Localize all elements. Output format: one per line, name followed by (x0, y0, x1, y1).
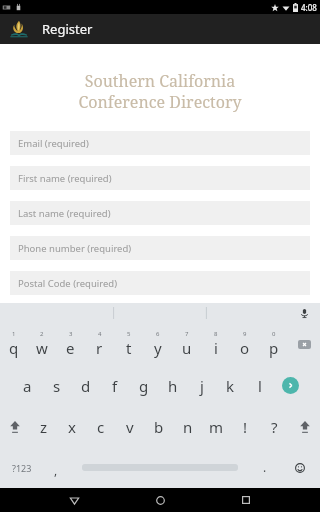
staticText: r (96, 338, 103, 358)
staticText: Last name (required) (18, 207, 111, 220)
button[interactable]: 8 (201, 323, 230, 365)
staticText: l (258, 376, 262, 396)
button[interactable]: l (245, 365, 274, 406)
staticText: Register (42, 20, 93, 38)
staticText: ! (243, 417, 248, 437)
button[interactable]: Next (274, 365, 306, 406)
staticText: i (214, 338, 218, 358)
button[interactable]: m (202, 406, 231, 447)
button[interactable]: ! (231, 406, 260, 447)
button[interactable]: Home (148, 488, 172, 512)
staticText: z (40, 417, 48, 437)
staticText: v (126, 417, 134, 437)
button[interactable]: z (30, 406, 58, 447)
button[interactable]: 7 (172, 323, 201, 365)
button[interactable]: 0 (259, 323, 288, 365)
button[interactable]: Postal Code (required) (10, 271, 310, 295)
button[interactable]: Shift (0, 406, 30, 447)
staticText: x (68, 417, 76, 437)
staticText: c (97, 417, 105, 437)
button[interactable]: s (42, 365, 71, 406)
staticText: Phone number (required) (18, 242, 132, 255)
staticText: k (226, 376, 235, 396)
staticText: 0 (272, 330, 276, 338)
button[interactable]: v (115, 406, 144, 447)
staticText: h (168, 376, 178, 396)
button[interactable]: 6 (143, 323, 172, 365)
button[interactable]: 5 (114, 323, 143, 365)
staticText: p (269, 338, 279, 358)
button[interactable]: b (144, 406, 173, 447)
staticText: n (183, 417, 193, 437)
button[interactable]: Phone number (required) (10, 236, 310, 260)
staticText: o (240, 338, 250, 358)
staticText: d (81, 376, 91, 396)
button[interactable]: Voice input (296, 305, 312, 321)
button[interactable]: n (173, 406, 202, 447)
staticText: 3 (69, 330, 73, 338)
button[interactable]: Email (required) (10, 131, 310, 155)
button[interactable]: a (13, 365, 42, 406)
staticText: m (209, 417, 224, 437)
button[interactable]: Backspace (288, 323, 320, 365)
button[interactable]: k (216, 365, 245, 406)
button[interactable]: Space (69, 447, 250, 488)
staticText: b (154, 417, 164, 437)
staticText: 5 (127, 330, 131, 338)
button[interactable]: 9 (230, 323, 259, 365)
staticText: a (23, 376, 32, 396)
staticText: g (139, 376, 149, 396)
staticText: ? (271, 417, 278, 437)
staticText: e (66, 338, 75, 358)
staticText: j (200, 376, 204, 396)
staticText: t (126, 338, 132, 358)
button[interactable]: ? (260, 406, 289, 447)
button[interactable]: 3 (56, 323, 85, 365)
staticText: ?123 (12, 462, 32, 474)
button[interactable]: x (58, 406, 86, 447)
staticText: First name (required) (18, 172, 112, 185)
button[interactable]: g (129, 365, 158, 406)
staticText: 7 (185, 330, 189, 338)
staticText: 6 (156, 330, 160, 338)
button[interactable]: d (71, 365, 100, 406)
staticText: Postal Code (required) (18, 277, 118, 290)
staticText: w (36, 338, 48, 358)
staticText: Southern California Conference Directory (0, 70, 320, 113)
staticText: s (53, 376, 61, 396)
staticText: 2 (40, 330, 44, 338)
staticText: . (263, 459, 267, 475)
staticText: 4:08 (301, 2, 317, 13)
staticText: Email (required) (18, 137, 89, 150)
staticText: , (54, 462, 58, 478)
button[interactable]: 2 (28, 323, 56, 365)
button[interactable]: App logo (8, 18, 30, 40)
button[interactable]: j (187, 365, 216, 406)
staticText: y (154, 338, 162, 358)
button[interactable]: h (158, 365, 187, 406)
button[interactable]: First name (required) (10, 166, 310, 190)
staticText: f (112, 376, 118, 396)
staticText: u (182, 338, 192, 358)
button[interactable]: Emoji (280, 447, 320, 488)
staticText: 4 (98, 330, 102, 338)
staticText: 1 (12, 330, 16, 338)
button[interactable]: Shift (289, 406, 320, 447)
staticText: q (9, 338, 19, 358)
button[interactable]: ?123 (0, 447, 43, 488)
button[interactable]: 1 (0, 323, 28, 365)
button[interactable]: f (100, 365, 129, 406)
button[interactable]: 4 (85, 323, 114, 365)
staticText: 8 (214, 330, 218, 338)
button[interactable]: . (250, 447, 280, 488)
staticText: 9 (243, 330, 247, 338)
button[interactable]: Recent apps (234, 488, 258, 512)
button[interactable]: c (86, 406, 115, 447)
button[interactable]: Back (62, 488, 86, 512)
button[interactable]: Last name (required) (10, 201, 310, 225)
button[interactable]: , (43, 447, 69, 488)
